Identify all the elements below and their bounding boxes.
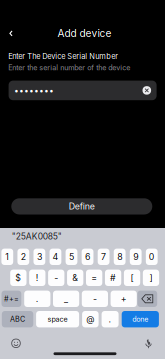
staticText: #+=	[4, 294, 19, 303]
button[interactable]: space	[36, 311, 79, 327]
button[interactable]: .	[24, 291, 50, 307]
button[interactable]: 7	[98, 249, 109, 265]
button[interactable]: Back	[2, 24, 20, 42]
staticText: 8	[117, 251, 122, 262]
button[interactable]: +	[111, 291, 137, 307]
staticText: 7	[101, 251, 106, 262]
staticText: done	[132, 315, 148, 323]
button[interactable]: ]	[143, 270, 159, 286]
staticText: Enter the serial number of the device	[8, 63, 130, 72]
button[interactable]: =	[86, 270, 102, 286]
staticText: 5	[69, 251, 74, 262]
button[interactable]: 3	[33, 249, 45, 265]
staticText: +	[121, 293, 127, 304]
button[interactable]: @	[82, 311, 99, 327]
staticText: "25AK0085"	[12, 231, 62, 241]
staticText: 4	[52, 251, 58, 262]
staticText: 6	[85, 251, 90, 262]
button[interactable]: 0	[146, 249, 158, 265]
staticText: #	[110, 272, 116, 283]
button[interactable]: $	[10, 270, 26, 286]
staticText: ABC	[10, 315, 25, 323]
staticText: .	[109, 314, 112, 324]
button[interactable]	[137, 291, 157, 307]
button[interactable]: Emoji	[8, 335, 24, 351]
button[interactable]: [	[124, 270, 140, 286]
button[interactable]: Clear text	[142, 86, 151, 95]
button[interactable]: 5	[66, 249, 77, 265]
button[interactable]: -	[48, 270, 64, 286]
staticText: space	[48, 315, 68, 323]
staticText: !	[36, 272, 39, 283]
staticText: ••••••••	[14, 85, 54, 95]
button[interactable]: 1	[1, 249, 13, 265]
staticText: [	[130, 272, 133, 283]
staticText: _	[64, 293, 68, 304]
button[interactable]: 6	[82, 249, 93, 265]
button[interactable]: 2	[17, 249, 29, 265]
staticText: $	[15, 272, 21, 283]
button[interactable]: 4	[50, 249, 61, 265]
staticText: -	[93, 293, 97, 304]
staticText: Enter The Device Serial Number	[8, 52, 118, 61]
button[interactable]: 8	[114, 249, 126, 265]
button[interactable]: ABC	[2, 311, 33, 327]
staticText: =	[91, 272, 97, 283]
button[interactable]: Define	[11, 198, 152, 214]
staticText: 1	[5, 251, 9, 262]
staticText: Define	[69, 201, 95, 212]
staticText: Add device	[57, 27, 111, 39]
button[interactable]: #	[105, 270, 121, 286]
staticText: 2	[21, 251, 26, 262]
button[interactable]: "25AK0085"	[1, 228, 73, 244]
button[interactable]: done	[122, 311, 159, 327]
button[interactable]: .	[102, 311, 119, 327]
staticText: ]	[149, 272, 152, 283]
button[interactable]: 9	[130, 249, 142, 265]
staticText: 9	[133, 251, 138, 262]
button[interactable]: _	[53, 291, 79, 307]
button[interactable]: &	[67, 270, 83, 286]
staticText: .	[36, 293, 39, 304]
staticText: &	[72, 272, 78, 283]
button[interactable]: !	[29, 270, 45, 286]
staticText: -	[54, 272, 58, 283]
button[interactable]: #+=	[1, 291, 21, 307]
button[interactable]: -	[82, 291, 108, 307]
staticText: 3	[37, 251, 42, 262]
staticText: @	[86, 314, 94, 324]
button[interactable]: Dictation	[141, 336, 157, 352]
staticText: 0	[149, 251, 155, 262]
